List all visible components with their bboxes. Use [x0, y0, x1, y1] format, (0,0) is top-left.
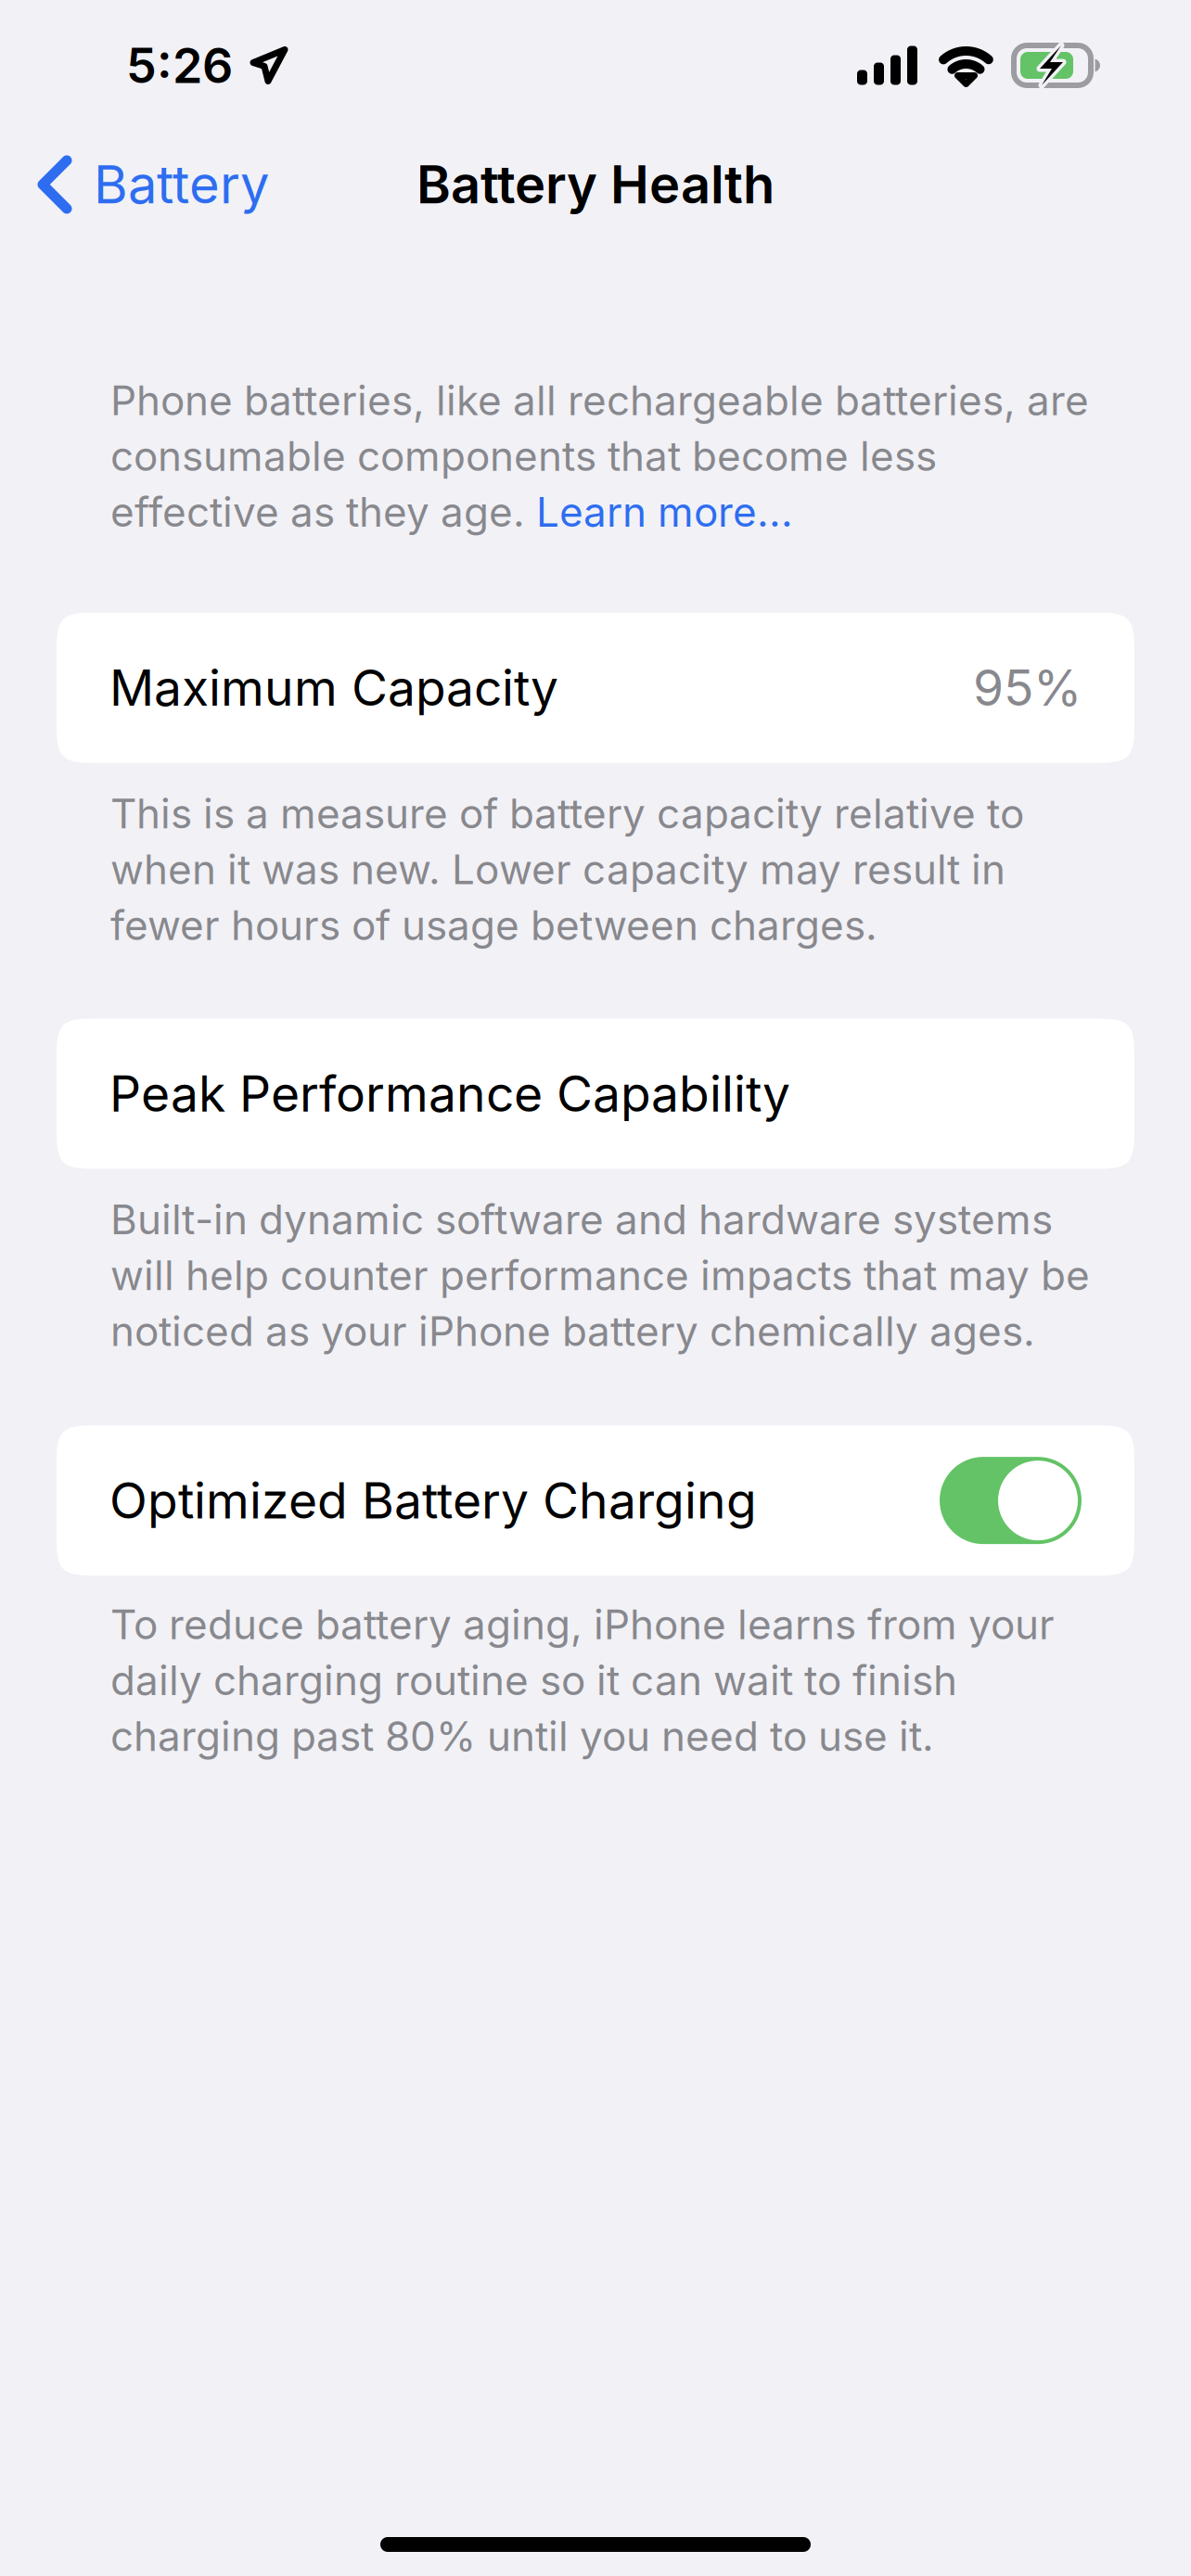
staticText: 95% — [973, 658, 1082, 718]
button[interactable]: Peak Performance Capability — [0, 1019, 1191, 1169]
button[interactable]: Optimized Battery Charging — [0, 1425, 1191, 1576]
staticText: Maximum Capacity — [109, 658, 558, 718]
staticText: Battery — [94, 153, 269, 216]
staticText: This is a measure of battery capacity re… — [110, 789, 1024, 950]
staticText: Battery Health — [416, 153, 775, 216]
staticText: Optimized Battery Charging — [109, 1471, 757, 1530]
staticText: To reduce battery aging, iPhone learns f… — [110, 1600, 1055, 1761]
button[interactable]: Battery — [0, 144, 291, 225]
button[interactable]: Maximum Capacity — [0, 613, 1191, 763]
staticText: Peak Performance Capability — [109, 1064, 790, 1124]
staticText: Built-in dynamic software and hardware s… — [110, 1195, 1090, 1356]
staticText: 5:26 — [126, 36, 233, 94]
staticText: Phone batteries, like all rechargeable b… — [110, 376, 1089, 537]
